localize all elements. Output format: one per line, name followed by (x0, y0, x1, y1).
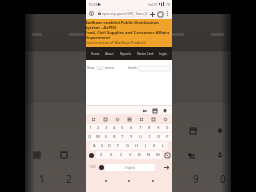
button[interactable]: Recent apps (102, 177, 110, 185)
button[interactable]: Emoji (97, 163, 105, 171)
button[interactable]: Backspace (162, 151, 172, 159)
button[interactable]: 4 (110, 124, 118, 132)
staticText: English (125, 166, 136, 170)
button[interactable]: Translate (141, 107, 148, 114)
button[interactable]: 3 (102, 124, 110, 132)
button[interactable]: C (116, 151, 126, 159)
staticText: U (139, 134, 143, 140)
staticText: Q (88, 134, 92, 140)
button[interactable]: H (132, 142, 141, 150)
button[interactable]: D (106, 142, 114, 150)
staticText: B (138, 152, 141, 158)
button[interactable]: Q (86, 133, 94, 141)
staticText: Home (91, 52, 100, 56)
button[interactable]: Enter (162, 163, 171, 171)
button[interactable]: 1 (86, 124, 94, 132)
button[interactable] (139, 66, 170, 71)
button[interactable]: E (102, 133, 110, 141)
button[interactable]: Settings (161, 115, 169, 123)
button[interactable]: M (153, 151, 162, 159)
button[interactable]: B (135, 151, 144, 159)
button[interactable]: Y (127, 133, 136, 141)
staticText: Show (87, 66, 95, 70)
button[interactable]: 5 (118, 124, 127, 132)
button[interactable]: 2 (94, 124, 102, 132)
staticText: X (110, 152, 113, 158)
button[interactable]: Home (90, 49, 101, 59)
button[interactable]: I (145, 133, 154, 141)
staticText: 4 (113, 125, 116, 131)
button[interactable]: S (98, 142, 106, 150)
staticText: 2 (97, 125, 100, 131)
button[interactable]: 6 (127, 124, 136, 132)
button[interactable]: 0 (163, 124, 172, 132)
button[interactable]: Stickers (149, 115, 157, 123)
staticText: S (101, 143, 104, 149)
button[interactable]: Login (158, 49, 168, 59)
button[interactable]: Ration Card (136, 49, 155, 59)
button[interactable]: V (126, 151, 135, 159)
button[interactable]: epos.mp.gov.in/SRC_Trans_M (96, 10, 147, 17)
button[interactable]: GIF (125, 115, 133, 123)
button[interactable]: 8 (145, 124, 154, 132)
button[interactable]: P (163, 133, 172, 141)
button[interactable]: J (141, 142, 150, 150)
button[interactable]: New tab (148, 10, 156, 18)
button[interactable]: G (123, 142, 132, 150)
staticText: 10:38 (88, 2, 98, 7)
staticText: Reports (120, 52, 131, 56)
button[interactable]: T (118, 133, 127, 141)
staticText: 10 (99, 67, 102, 70)
button[interactable]: Translate (137, 115, 145, 123)
button[interactable]: N (144, 151, 153, 159)
button[interactable]: Reports (119, 49, 132, 59)
button[interactable]: Clipboard (101, 115, 109, 123)
staticText: T (121, 134, 124, 140)
button[interactable]: Switch tabs (156, 10, 164, 18)
button[interactable]: F (114, 142, 123, 150)
staticText: I (149, 134, 151, 140)
staticText: 1 (89, 125, 92, 131)
button[interactable]: Saved cards (151, 107, 158, 114)
button[interactable]: Emoji (113, 115, 121, 123)
button[interactable]: Address (161, 107, 168, 114)
button[interactable]: About (104, 49, 115, 59)
staticText: Z (100, 152, 103, 158)
staticText: G (126, 143, 130, 149)
button[interactable]: Z (96, 151, 106, 159)
staticText: 5 (121, 125, 124, 131)
button[interactable]: Home (125, 177, 133, 185)
button[interactable]: 10 (96, 66, 104, 70)
button[interactable]: A (90, 142, 98, 150)
button[interactable]: 9 (154, 124, 163, 132)
button[interactable]: X (106, 151, 116, 159)
button[interactable]: English (105, 164, 155, 171)
button[interactable]: Shift (86, 151, 96, 159)
staticText: About (105, 52, 114, 56)
staticText: D (108, 143, 112, 149)
staticText: W (96, 134, 100, 140)
staticText: R (113, 134, 116, 140)
staticText: Login (159, 52, 167, 56)
staticText: C (120, 152, 123, 158)
staticText: 78 (166, 2, 170, 7)
staticText: N (147, 152, 151, 158)
staticText: Search: (128, 66, 138, 70)
staticText: M (156, 152, 160, 158)
button[interactable]: U (136, 133, 145, 141)
button[interactable]: Site information (88, 10, 95, 17)
button[interactable]: K (150, 142, 159, 150)
staticText: H (135, 143, 139, 149)
staticText: 6 (130, 125, 133, 131)
button[interactable]: 7 (136, 124, 145, 132)
button[interactable]: ?123 (87, 163, 97, 171)
button[interactable]: O (154, 133, 163, 141)
button[interactable]: L (159, 142, 168, 150)
button[interactable]: More options (164, 10, 171, 17)
staticText: 9 (193, 172, 199, 184)
button[interactable]: Toolbar (89, 115, 97, 123)
button[interactable]: Back (149, 177, 157, 185)
button[interactable]: W (94, 133, 102, 141)
button[interactable]: R (110, 133, 118, 141)
